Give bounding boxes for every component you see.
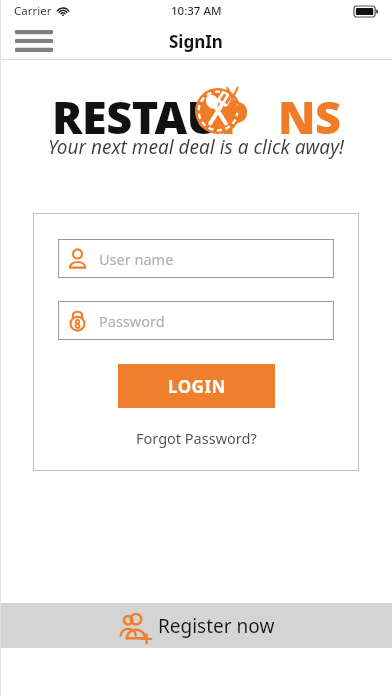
staticText: Forgot Password? <box>136 428 257 448</box>
staticText: Your next meal deal is a click away! <box>48 134 344 160</box>
button[interactable]: Password <box>58 301 334 340</box>
staticText: Register now <box>158 613 275 639</box>
staticText: User name <box>99 249 174 269</box>
staticText: SignIn <box>169 30 223 53</box>
staticText: RESTAUP <box>52 86 249 147</box>
button[interactable]: Menu <box>10 24 58 58</box>
button[interactable]: User name <box>58 239 334 278</box>
staticText: 10:37 AM <box>171 3 222 19</box>
button[interactable]: Forgot Password? <box>132 424 261 452</box>
staticText: Carrier <box>14 3 52 19</box>
button[interactable]: Register now <box>0 603 392 648</box>
staticText: Password <box>99 311 165 331</box>
staticText: LOGIN <box>168 375 226 398</box>
staticText: NS <box>278 86 341 147</box>
button[interactable]: LOGIN <box>118 364 275 408</box>
